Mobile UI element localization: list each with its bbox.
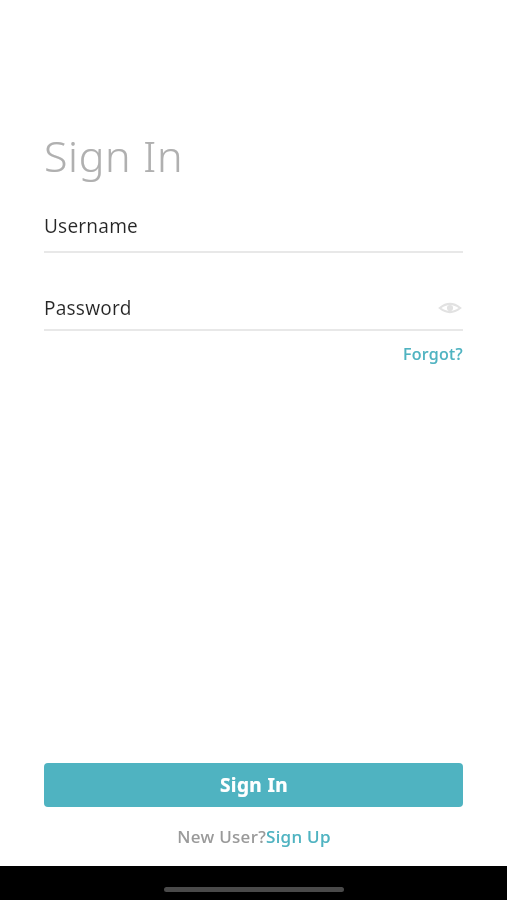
staticText: Username	[44, 213, 139, 239]
staticText: Sign In	[220, 772, 288, 798]
button[interactable]: Password	[0, 295, 507, 331]
staticText: Password	[44, 295, 132, 321]
button[interactable]: Sign In	[44, 763, 463, 807]
staticText: New User?Sign Up	[177, 825, 331, 848]
staticText: Sign In	[44, 126, 184, 185]
button[interactable]: Forgot?	[403, 343, 463, 365]
button[interactable]: Show password	[437, 295, 463, 321]
staticText: Forgot?	[403, 343, 463, 365]
button[interactable]: New User?Sign Up	[177, 825, 331, 848]
button[interactable]: Username	[0, 213, 507, 253]
